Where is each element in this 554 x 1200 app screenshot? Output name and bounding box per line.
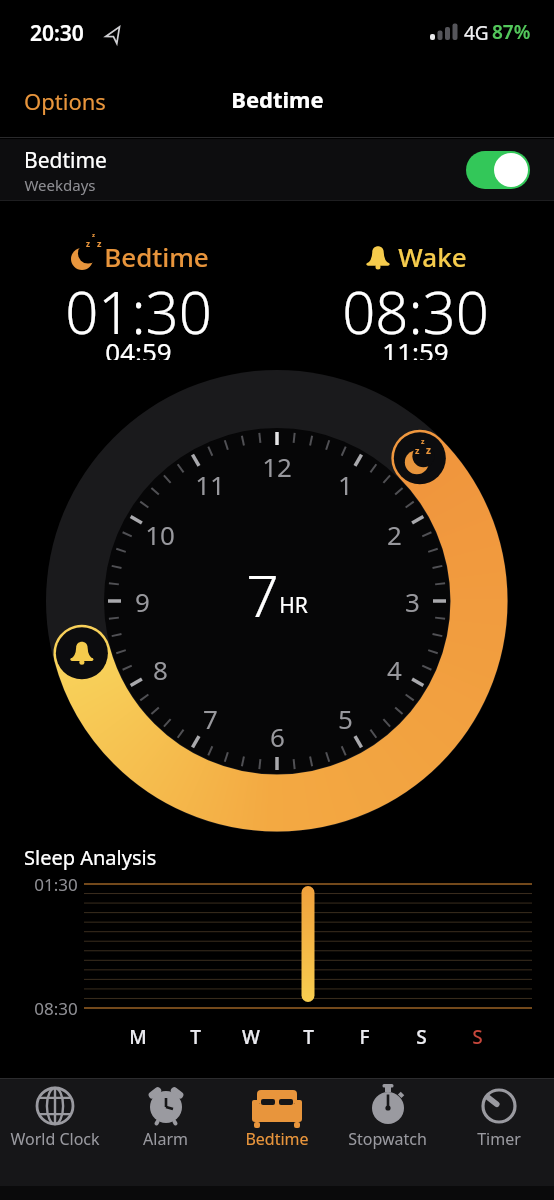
staticText: Sleep Analysis xyxy=(24,844,157,871)
staticText: Bedtime xyxy=(231,84,324,114)
staticText: F xyxy=(359,1024,370,1050)
staticText: z xyxy=(92,231,95,239)
button[interactable]: Timer xyxy=(443,1084,554,1150)
staticText: 7 xyxy=(246,556,279,634)
staticText: 8 xyxy=(153,652,168,687)
staticText: Wake xyxy=(398,239,467,274)
staticText: z xyxy=(426,443,431,457)
button[interactable]: Bedtime xyxy=(221,1084,332,1150)
staticText: 04:59 xyxy=(105,334,172,360)
staticText: T xyxy=(303,1024,314,1050)
staticText: 2 xyxy=(387,517,402,552)
staticText: 01:30 xyxy=(34,873,78,896)
staticText: 7 xyxy=(203,701,218,736)
staticText: 11:59 xyxy=(382,334,449,360)
staticText: S xyxy=(472,1024,483,1050)
button[interactable]: Bedtime xyxy=(0,139,554,201)
staticText: Bedtime xyxy=(24,146,107,175)
staticText: Alarm xyxy=(143,1128,188,1150)
button[interactable] xyxy=(466,151,530,189)
staticText: World Clock xyxy=(10,1128,100,1150)
staticText: 12 xyxy=(262,449,292,484)
staticText: 5 xyxy=(338,701,353,736)
button[interactable]: Stopwatch xyxy=(332,1084,443,1150)
staticText: z xyxy=(97,237,102,249)
staticText: W xyxy=(242,1024,260,1050)
staticText: 20:30 xyxy=(30,19,84,48)
staticText: Options xyxy=(24,86,106,116)
staticText: 08:30 xyxy=(342,272,489,342)
staticText: T xyxy=(190,1024,201,1050)
staticText: Bedtime xyxy=(104,239,209,274)
staticText: 08:30 xyxy=(34,997,78,1020)
staticText: 4 xyxy=(387,652,402,687)
staticText: z xyxy=(86,238,90,249)
staticText: Stopwatch xyxy=(348,1128,427,1150)
staticText: 1 xyxy=(338,467,353,502)
staticText: HR xyxy=(279,591,308,620)
staticText: 11 xyxy=(195,467,225,502)
staticText: z xyxy=(415,444,420,456)
staticText: 9 xyxy=(135,584,150,619)
staticText: 3 xyxy=(405,584,420,619)
staticText: 87% xyxy=(492,19,531,45)
button[interactable]: Alarm xyxy=(110,1084,221,1150)
staticText: M xyxy=(129,1024,147,1050)
staticText: 4G xyxy=(464,20,489,46)
staticText: Timer xyxy=(477,1128,521,1150)
staticText: z xyxy=(421,437,425,447)
staticText: S xyxy=(416,1024,427,1050)
staticText: 01:30 xyxy=(65,272,212,342)
staticText: 10 xyxy=(145,517,175,552)
staticText: Weekdays xyxy=(24,175,96,195)
button[interactable]: Options xyxy=(16,78,114,124)
staticText: Bedtime xyxy=(245,1128,309,1150)
staticText: 6 xyxy=(270,719,285,754)
button[interactable]: World Clock xyxy=(0,1084,110,1150)
